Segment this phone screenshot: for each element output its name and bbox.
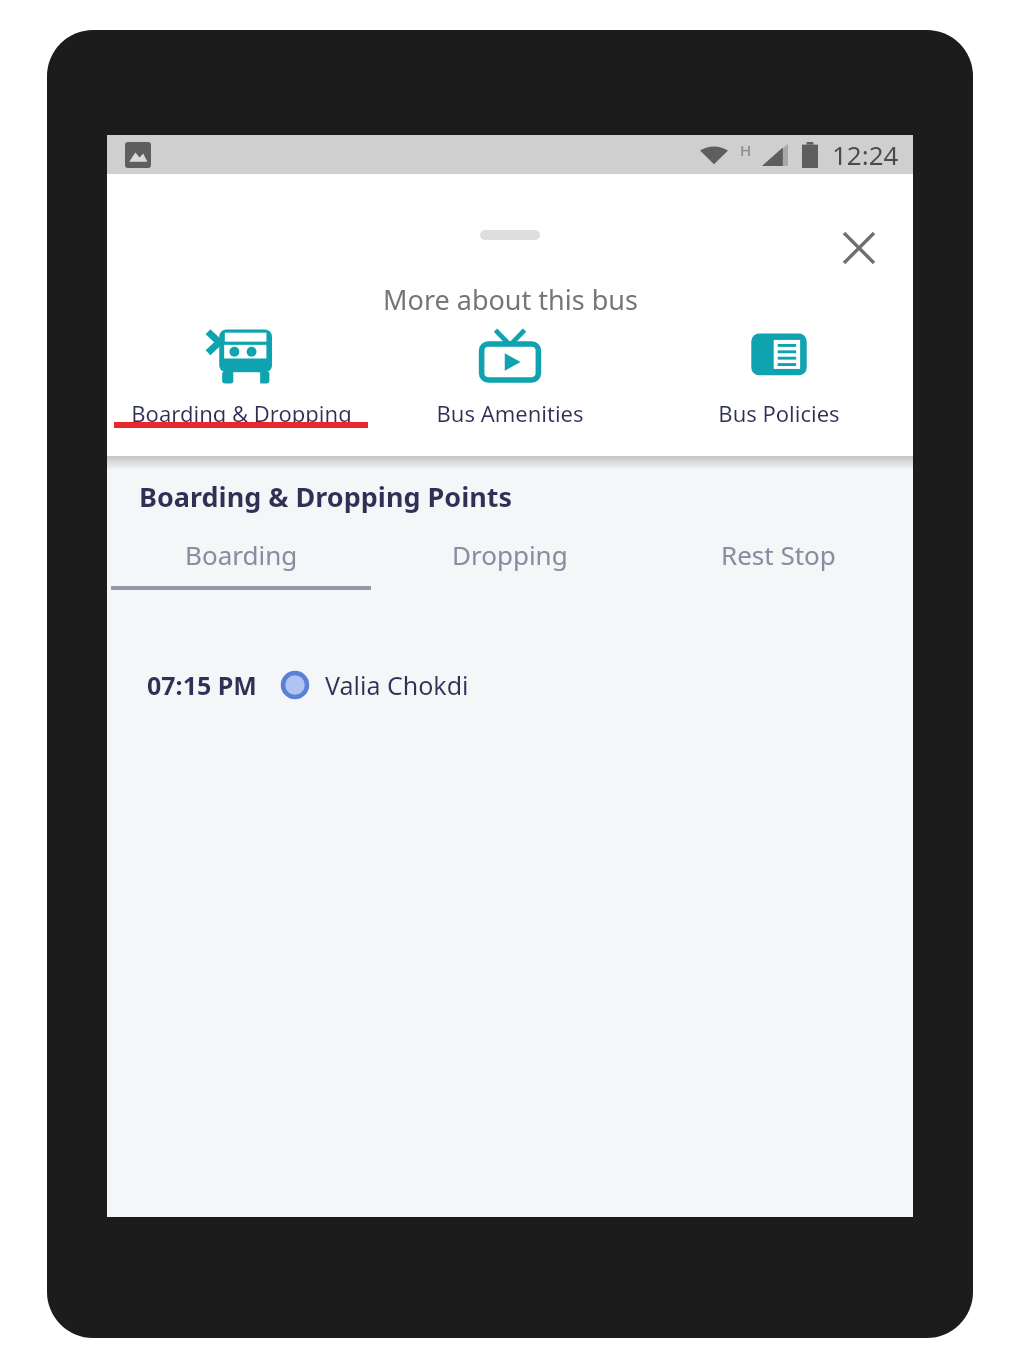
staticText: 07:15 PM bbox=[147, 668, 257, 702]
staticText: Dropping bbox=[452, 537, 568, 572]
staticText: H bbox=[740, 140, 752, 160]
staticText: Bus Policies bbox=[718, 398, 840, 428]
button[interactable]: Boarding bbox=[107, 537, 375, 590]
staticText: Boarding & Dropping bbox=[131, 398, 352, 428]
button[interactable]: Boarding & Dropping bbox=[107, 314, 375, 428]
button[interactable]: 07:15 PM bbox=[107, 662, 913, 708]
staticText: 12:24 bbox=[832, 137, 899, 172]
staticText: More about this bus bbox=[383, 281, 638, 318]
staticText: Rest Stop bbox=[721, 537, 836, 572]
staticText: Boarding & Dropping Points bbox=[139, 478, 513, 515]
staticText: Bus Amenities bbox=[436, 398, 584, 428]
button[interactable]: Dropping bbox=[375, 537, 644, 590]
button[interactable]: Rest Stop bbox=[644, 537, 913, 590]
button[interactable]: Bus Policies bbox=[644, 314, 913, 428]
staticText: Valia Chokdi bbox=[325, 668, 469, 702]
staticText: Boarding bbox=[185, 537, 298, 572]
button[interactable]: Close bbox=[831, 220, 887, 276]
button[interactable]: Bus Amenities bbox=[375, 314, 644, 428]
